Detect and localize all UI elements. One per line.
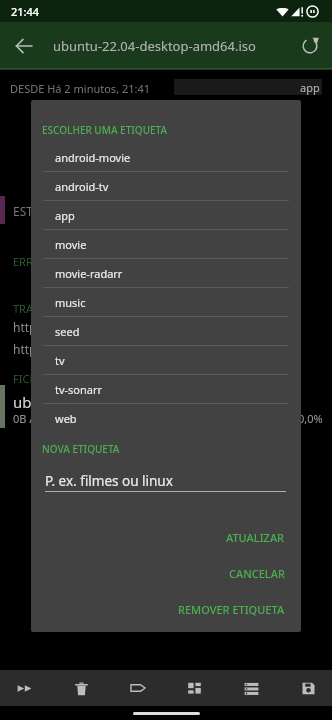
button[interactable]: Resume (0, 670, 48, 706)
button[interactable]: app (31, 201, 301, 230)
button[interactable]: Back (0, 22, 48, 70)
staticText: CANCELAR (229, 566, 285, 581)
staticText: DESDE Há 2 minutos, 21:41 (10, 81, 151, 96)
button[interactable]: Save (284, 670, 332, 706)
staticText: web (55, 411, 77, 426)
button[interactable]: movie (31, 230, 301, 259)
staticText: REMOVER ETIQUETA (178, 602, 285, 617)
staticText: android-movie (55, 150, 131, 165)
staticText: https://torrent.ubuntu.com/announce (13, 319, 227, 335)
staticText: ERRO (13, 254, 42, 269)
staticText: P. ex. filmes ou linux (45, 472, 173, 490)
staticText: 0,0% (298, 411, 323, 426)
staticText: 21:44 (11, 4, 40, 19)
button[interactable]: music (31, 288, 301, 317)
staticText: app (300, 80, 320, 95)
staticText: tv (55, 353, 65, 368)
button[interactable]: List view (227, 670, 275, 706)
staticText: music (55, 295, 86, 310)
button[interactable]: movie-radarr (31, 259, 301, 288)
button[interactable]: android-movie (31, 143, 301, 172)
button[interactable]: Tag (114, 670, 162, 706)
staticText: ESCOLHER UMA ETIQUETA (42, 123, 168, 137)
staticText: ATUALIZAR (226, 530, 285, 545)
staticText: 0B / 3,6GB (13, 411, 67, 426)
button[interactable]: web (31, 404, 301, 433)
button[interactable]: Delete (57, 670, 105, 706)
staticText: FICHEIROS (13, 371, 69, 386)
staticText: android-tv (55, 179, 109, 194)
staticText: NOVA ETIQUETA (42, 442, 120, 456)
staticText: app (55, 208, 75, 223)
button[interactable]: CANCELAR (31, 555, 301, 591)
staticText: movie-radarr (55, 266, 123, 281)
button[interactable]: Refresh (288, 24, 332, 68)
button[interactable]: ATUALIZAR (31, 519, 301, 555)
button[interactable]: tv-sonarr (31, 375, 301, 404)
staticText: https://ipv6.torrent.ubuntu.com/ann (13, 341, 219, 357)
button[interactable]: REMOVER ETIQUETA (31, 591, 301, 627)
button[interactable]: android-tv (31, 172, 301, 201)
staticText: seed (55, 324, 80, 339)
staticText: ubuntu-22.04-desktop-amd64.iso (53, 37, 288, 55)
button[interactable]: tv (31, 346, 301, 375)
staticText: movie (55, 237, 87, 252)
staticText: ubuntu-22.04-desktop-amd64.iso (13, 392, 248, 412)
button[interactable]: Grid view (170, 670, 218, 706)
staticText: ESTADO a semear (13, 203, 114, 219)
staticText: tv-sonarr (55, 382, 103, 397)
button[interactable]: seed (31, 317, 301, 346)
staticText: TRACKERS (13, 301, 66, 316)
